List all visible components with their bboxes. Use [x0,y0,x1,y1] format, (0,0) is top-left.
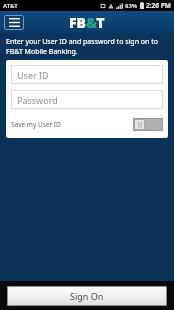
button[interactable]: Sign On [7,286,167,306]
button[interactable]: User ID [11,65,163,84]
staticText: Enter your User ID and password to sign … [6,37,164,57]
button[interactable]: Open navigation menu [4,15,24,30]
staticText: AT&T [3,2,18,10]
staticText: Sign On [70,290,104,302]
staticText: Save my User ID [11,120,61,129]
staticText: Password [17,94,58,106]
button[interactable]: Save my User ID toggle, off [133,118,163,131]
staticText: 83% [125,2,138,10]
staticText: 2:26 PM [146,1,171,10]
staticText: User ID [17,69,49,81]
button[interactable]: Save my User ID [11,116,163,132]
staticText: FB&T [69,13,105,32]
button[interactable]: Password [11,90,163,109]
